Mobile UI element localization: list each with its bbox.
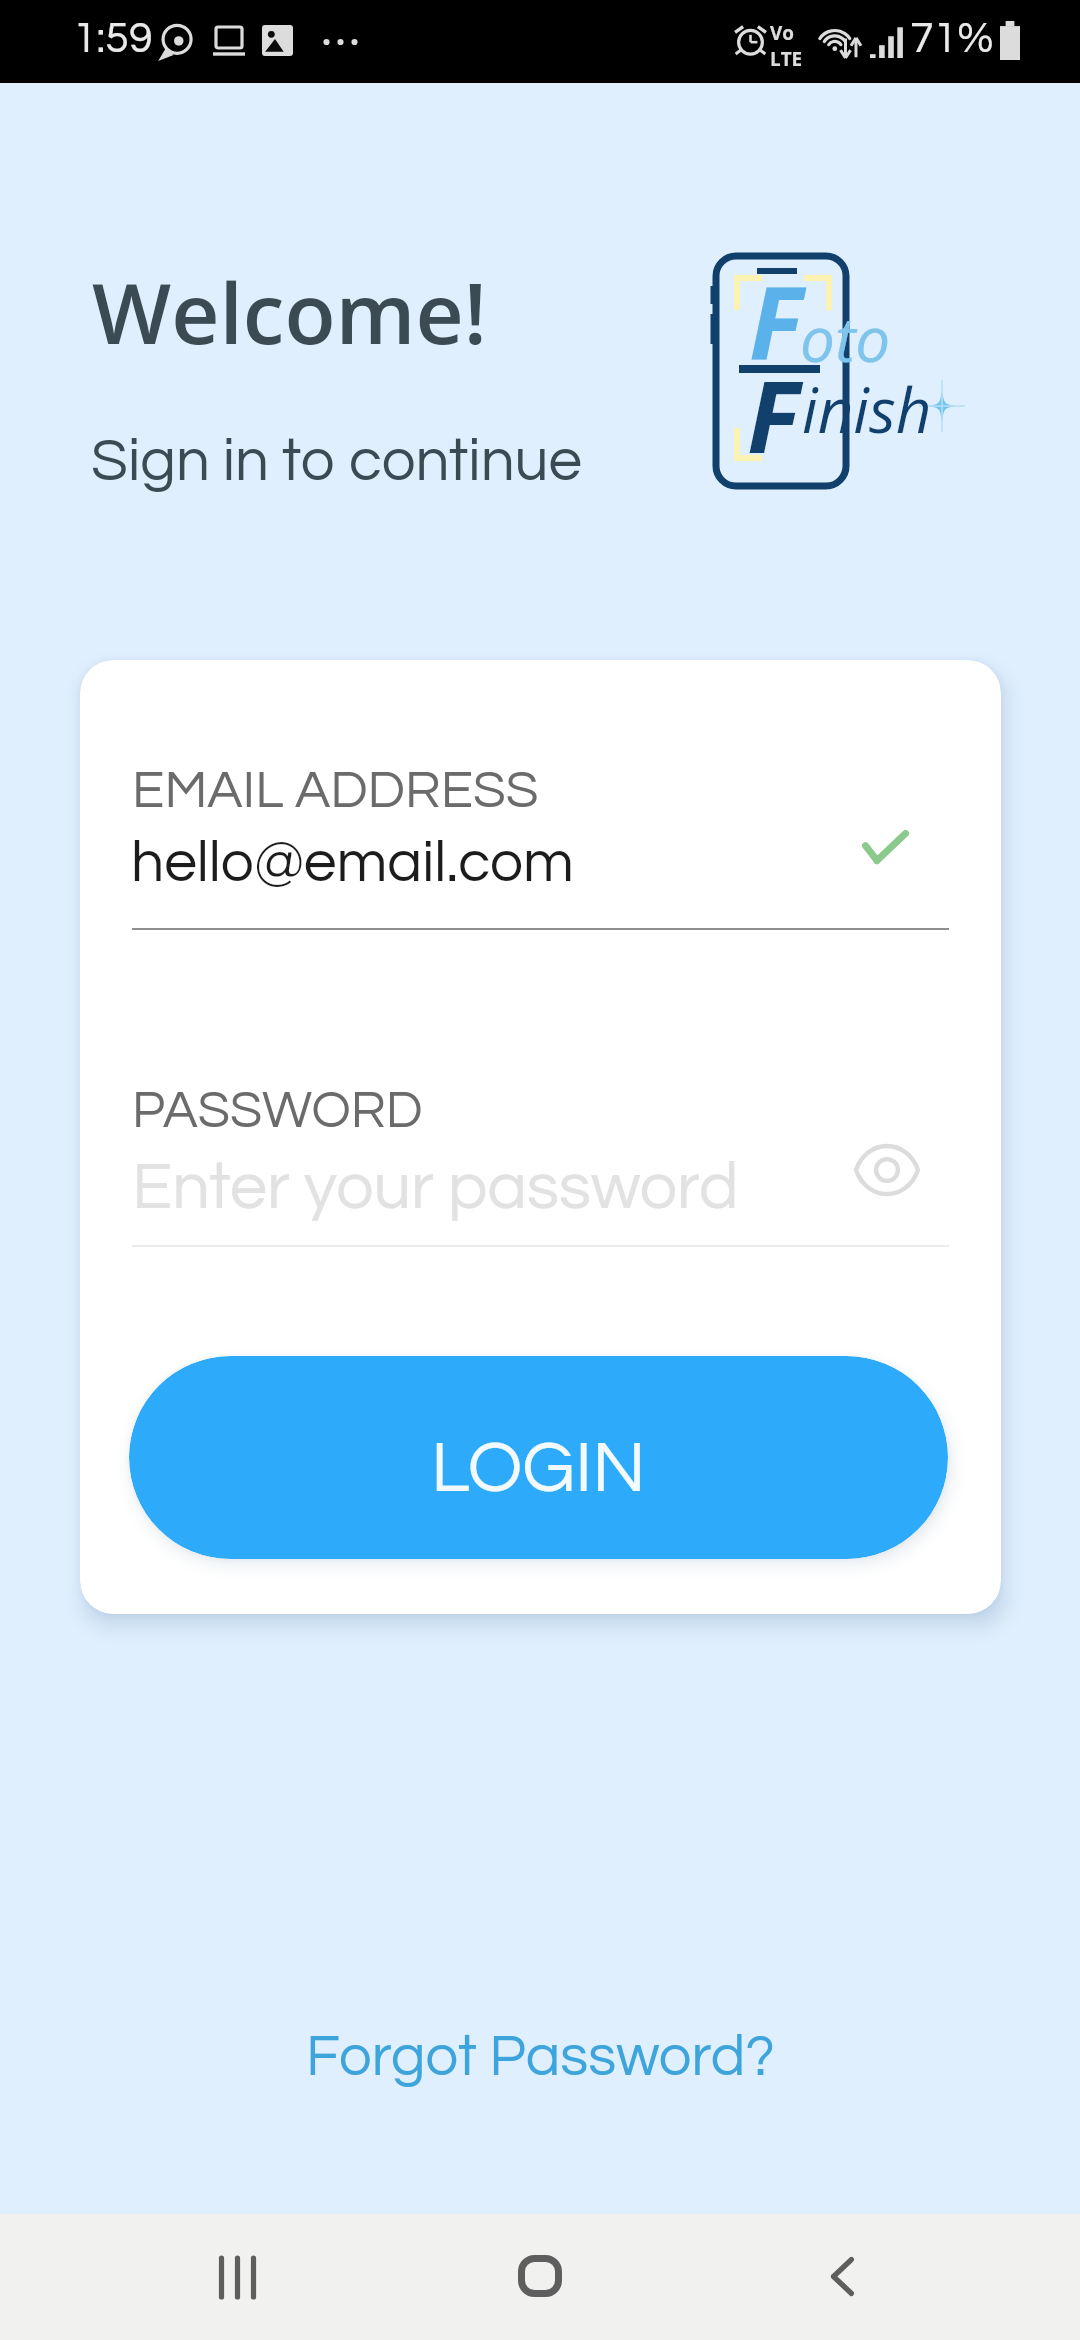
staticText: Welcome! [92, 254, 487, 368]
staticText: 1:59 [73, 17, 153, 61]
button[interactable]: Show password [854, 1136, 920, 1204]
staticText: Forgot Password? [306, 2027, 775, 2087]
staticText: Sign in to continue [91, 431, 582, 493]
button[interactable]: Home [500, 2236, 580, 2316]
button[interactable]: Back [802, 2236, 882, 2316]
staticText: Vo [770, 20, 794, 46]
staticText: Enter your password [132, 1154, 739, 1222]
button[interactable]: LOGIN [129, 1356, 948, 1559]
staticText: EMAIL ADDRESS [132, 763, 539, 818]
staticText: oto [800, 296, 891, 380]
staticText: PASSWORD [132, 1084, 423, 1138]
staticText: 71% [910, 17, 994, 61]
staticText: hello@email.com [131, 833, 574, 893]
button[interactable]: Recent apps [197, 2237, 277, 2317]
staticText: LTE [770, 46, 803, 72]
staticText: inish [802, 367, 932, 451]
staticText: F [749, 252, 803, 388]
staticText: F [747, 348, 800, 482]
button[interactable]: Forgot Password? [264, 2000, 817, 2114]
staticText: LOGIN [431, 1431, 646, 1506]
